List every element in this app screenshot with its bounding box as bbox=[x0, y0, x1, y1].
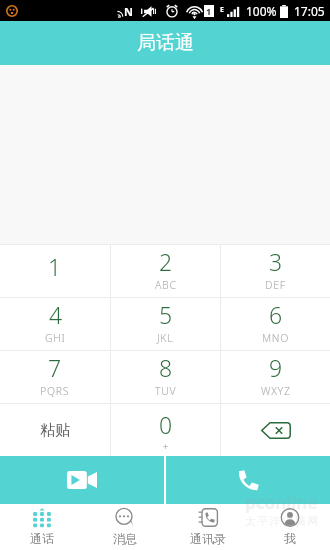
staticText: E bbox=[220, 5, 224, 15]
staticText: 4 bbox=[49, 299, 63, 330]
staticText: WXYZ bbox=[261, 384, 291, 398]
staticText: MNO bbox=[262, 331, 289, 345]
staticText: 100% bbox=[246, 3, 277, 19]
button[interactable]: 6 bbox=[221, 298, 330, 350]
staticText: pconline bbox=[245, 491, 318, 514]
button[interactable]: 4 bbox=[0, 298, 110, 350]
staticText: 1 bbox=[206, 5, 212, 17]
button[interactable]: 7 bbox=[0, 351, 110, 403]
staticText: 通话 bbox=[30, 531, 54, 546]
button[interactable]: 我 bbox=[249, 504, 330, 550]
staticText: DEF bbox=[265, 278, 286, 292]
staticText: N bbox=[124, 4, 133, 18]
staticText: + bbox=[163, 440, 169, 452]
staticText: 7 bbox=[48, 352, 62, 383]
staticText: 1 bbox=[48, 251, 62, 282]
button[interactable]: Backspace bbox=[221, 404, 330, 456]
button[interactable]: 通讯录 bbox=[166, 504, 249, 550]
staticText: 9 bbox=[269, 352, 283, 383]
button[interactable]: 9 bbox=[221, 351, 330, 403]
staticText: 消息 bbox=[113, 531, 137, 546]
button[interactable]: 2 bbox=[111, 245, 220, 297]
button[interactable]: 8 bbox=[111, 351, 220, 403]
button[interactable]: 0 bbox=[111, 404, 220, 456]
button[interactable]: 粘贴 bbox=[0, 404, 110, 456]
staticText: 6 bbox=[269, 299, 283, 330]
staticText: 2 bbox=[159, 246, 173, 277]
staticText: 通讯录 bbox=[190, 531, 226, 546]
staticText: 8 bbox=[159, 352, 173, 383]
staticText: GHI bbox=[45, 331, 66, 345]
staticText: 我 bbox=[284, 531, 296, 546]
staticText: 3 bbox=[269, 246, 283, 277]
button[interactable]: Call bbox=[166, 456, 330, 504]
staticText: TUV bbox=[155, 384, 177, 398]
staticText: 5 bbox=[159, 299, 173, 330]
button[interactable]: 通话 bbox=[0, 504, 83, 550]
staticText: 粘贴 bbox=[40, 421, 70, 440]
button[interactable]: 消息 bbox=[83, 504, 166, 550]
button[interactable]: 3 bbox=[221, 245, 330, 297]
button[interactable]: 1 bbox=[0, 245, 110, 297]
staticText: 局话通 bbox=[137, 31, 194, 55]
staticText: 太平洋电脑网 bbox=[244, 514, 319, 528]
staticText: 0 bbox=[159, 409, 173, 440]
button[interactable]: Video call bbox=[0, 456, 164, 504]
staticText: ABC bbox=[155, 278, 177, 292]
button[interactable]: 5 bbox=[111, 298, 220, 350]
staticText: 17:05 bbox=[294, 3, 325, 19]
staticText: JKL bbox=[157, 331, 174, 345]
staticText: PQRS bbox=[40, 384, 70, 398]
